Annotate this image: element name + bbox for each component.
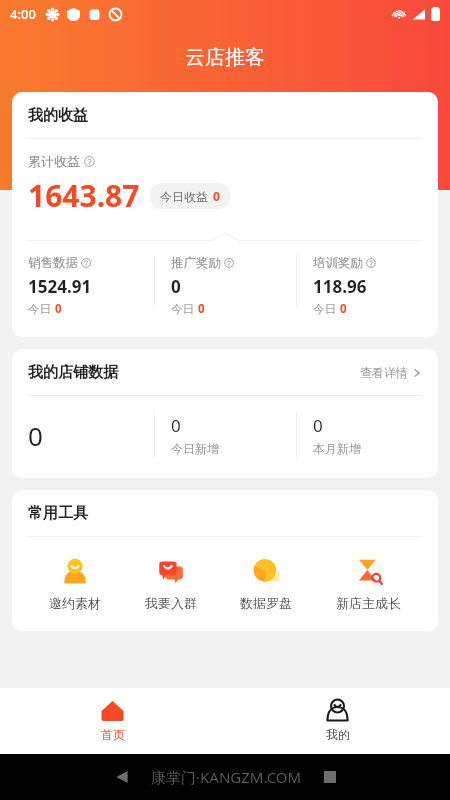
staticText: 1524.91 xyxy=(28,275,92,298)
staticText: 本月新增 xyxy=(313,441,361,456)
other: Back xyxy=(115,770,129,784)
staticText: 查看详情 xyxy=(360,365,408,380)
button[interactable]: 新店主成长 xyxy=(330,555,407,613)
button[interactable]: 数据罗盘 xyxy=(234,555,298,613)
button[interactable]: 邀约素材 xyxy=(43,555,107,613)
staticText: 0 xyxy=(313,414,323,437)
staticText: 0 xyxy=(28,418,43,453)
staticText: 邀约素材 xyxy=(49,595,101,611)
staticText: 今日 xyxy=(171,302,194,316)
button[interactable]: 首页 xyxy=(0,688,225,754)
button[interactable]: 培训奖励 xyxy=(297,255,438,317)
staticText: 云店推客 xyxy=(185,45,265,70)
staticText: 首页 xyxy=(101,727,125,742)
staticText: 118.96 xyxy=(313,275,367,298)
staticText: 今日新增 xyxy=(171,441,219,456)
button[interactable]: 0 xyxy=(155,414,296,456)
staticText: 今日 xyxy=(28,302,51,316)
staticText: 我的店铺数据 xyxy=(28,363,118,382)
button[interactable]: 今日收益 xyxy=(150,183,230,209)
staticText: 销售数据 xyxy=(28,255,78,271)
staticText: 0 xyxy=(198,301,205,317)
staticText: 0 xyxy=(171,414,181,437)
staticText: 今日收益 xyxy=(160,189,208,204)
staticText: 我的 xyxy=(326,727,350,742)
button[interactable]: 销售数据 xyxy=(12,255,154,317)
staticText: 推广奖励 xyxy=(171,255,221,271)
staticText: 4:00 xyxy=(10,5,36,23)
button[interactable]: 我的 xyxy=(225,688,450,754)
staticText: 新店主成长 xyxy=(336,595,401,611)
button[interactable]: 查看详情 xyxy=(360,365,422,380)
staticText: 0 xyxy=(340,301,347,317)
staticText: 0 xyxy=(171,275,181,298)
staticText: 0 xyxy=(213,188,220,204)
button[interactable]: 0 xyxy=(297,414,438,456)
staticText: 0 xyxy=(55,301,62,317)
staticText: 康掌门·KANGZM.COM xyxy=(151,767,302,787)
staticText: 我要入群 xyxy=(145,595,197,611)
staticText: 数据罗盘 xyxy=(240,595,292,611)
button[interactable]: 我要入群 xyxy=(139,555,203,613)
staticText: 我的收益 xyxy=(28,106,88,125)
staticText: 常用工具 xyxy=(28,504,88,523)
staticText: 累计收益 xyxy=(28,153,80,169)
staticText: 今日 xyxy=(313,302,336,316)
staticText: 培训奖励 xyxy=(313,255,363,271)
button[interactable]: 推广奖励 xyxy=(155,255,296,317)
staticText: 1643.87 xyxy=(28,175,140,216)
